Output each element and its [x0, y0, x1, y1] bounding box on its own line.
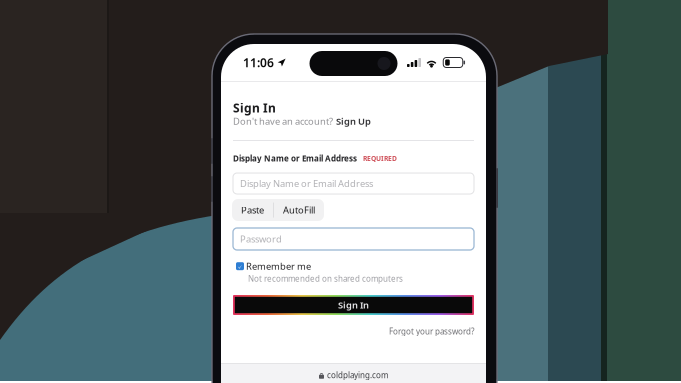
staticText: Remember me	[246, 260, 311, 272]
staticText: Sign In	[338, 299, 369, 311]
button[interactable]: Sign Up	[336, 115, 371, 127]
staticText: Display Name or Email Address	[233, 153, 357, 164]
button[interactable]: AutoFill	[274, 199, 324, 221]
button[interactable]: Paste	[232, 199, 273, 221]
staticText: 11:06	[243, 54, 274, 70]
staticText: coldplaying.com	[327, 370, 388, 380]
button[interactable]: Forgot your password?	[389, 326, 474, 337]
staticText: REQUIRED	[363, 154, 397, 163]
staticText: Sign Up	[336, 115, 371, 127]
staticText: Forgot your password?	[389, 326, 474, 337]
staticText: Don't have an account?	[233, 115, 333, 127]
staticText: AutoFill	[283, 204, 315, 216]
staticText: Display Name or Email Address	[240, 177, 373, 190]
button[interactable]: Remember me	[236, 260, 311, 272]
staticText: Not recommended on shared computers	[248, 273, 403, 284]
staticText: Sign In	[233, 100, 276, 116]
staticText: Password	[240, 233, 282, 245]
staticText: Paste	[241, 204, 264, 216]
button[interactable]: Sign In	[233, 295, 474, 315]
